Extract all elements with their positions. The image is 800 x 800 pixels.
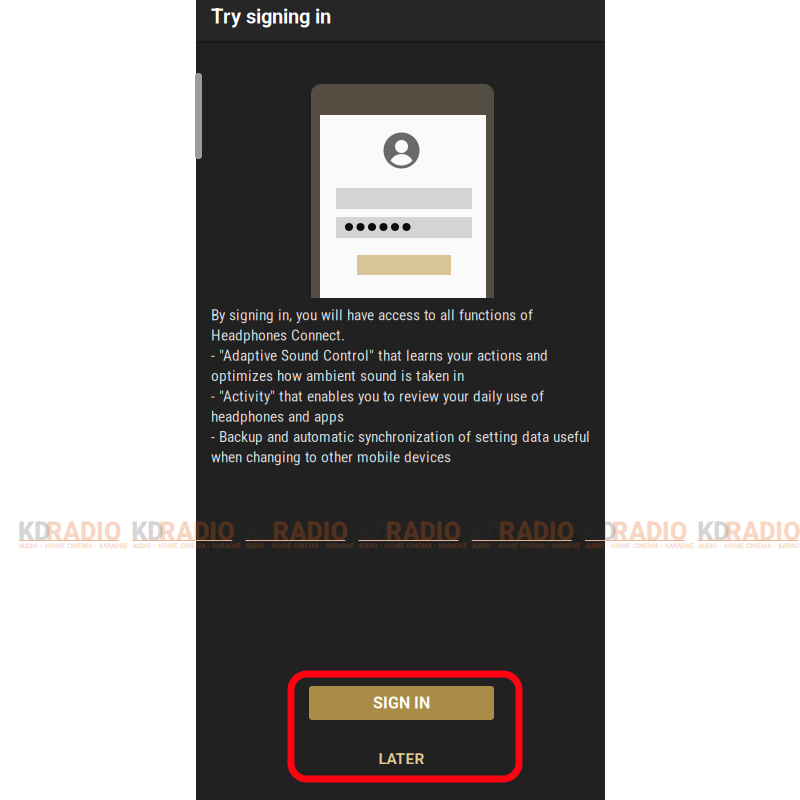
staticText: Headphones Connect. <box>211 326 345 344</box>
staticText: RADIO <box>386 517 461 547</box>
staticText: RADIO <box>612 517 687 547</box>
button[interactable]: LATER <box>309 745 494 773</box>
staticText: KD <box>697 517 729 547</box>
staticText: KD <box>244 517 276 547</box>
staticText: AUDIO - HOME CINEMA - KARAOKE <box>245 542 354 550</box>
staticText: AUDIO - HOME CINEMA - KARAOKE <box>359 542 468 550</box>
staticText: SIGN IN <box>373 694 430 712</box>
staticText: - "Activity" that enables you to review … <box>211 387 544 405</box>
staticText: KD <box>18 517 50 547</box>
staticText: KD <box>584 517 616 547</box>
staticText: RADIO <box>159 517 234 547</box>
staticText: AUDIO - HOME CINEMA - KARAOKE <box>19 542 128 550</box>
staticText: RADIO <box>725 517 800 547</box>
staticText: Try signing in <box>211 5 331 28</box>
staticText: KD <box>471 517 503 547</box>
staticText: RADIO <box>46 517 121 547</box>
staticText: By signing in, you will have access to a… <box>211 306 533 324</box>
staticText: RADIO <box>499 517 574 547</box>
staticText: AUDIO - HOME CINEMA - KARAOKE <box>698 542 800 550</box>
staticText: RADIO <box>272 517 347 547</box>
staticText: AUDIO - HOME CINEMA - KARAOKE <box>472 542 581 550</box>
staticText: optimizes how ambient sound is taken in <box>211 367 464 385</box>
staticText: - Backup and automatic synchronization o… <box>211 428 590 446</box>
staticText: AUDIO - HOME CINEMA - KARAOKE <box>132 542 241 550</box>
staticText: when changing to other mobile devices <box>211 448 451 466</box>
staticText: headphones and apps <box>211 407 344 425</box>
button[interactable]: SIGN IN <box>309 686 494 720</box>
staticText: - "Adaptive Sound Control" that learns y… <box>211 347 548 365</box>
staticText: AUDIO - HOME CINEMA - KARAOKE <box>585 542 694 550</box>
staticText: KD <box>358 517 390 547</box>
staticText: LATER <box>378 750 424 768</box>
staticText: KD <box>131 517 163 547</box>
